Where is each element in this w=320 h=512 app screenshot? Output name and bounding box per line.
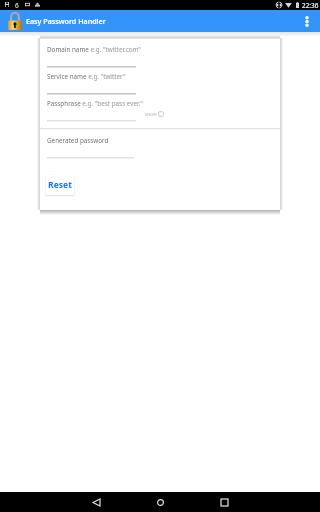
button[interactable]: More options <box>296 10 318 32</box>
staticText: Service name e.g. "twitter" <box>47 72 126 81</box>
button[interactable]: Home <box>150 492 170 512</box>
staticText: Passphrase e.g. "best pass ever." <box>47 99 143 108</box>
staticText: Easy Password Handler <box>26 16 106 26</box>
button[interactable]: Back <box>86 492 106 512</box>
button[interactable]: Show passphrase <box>145 111 164 117</box>
button[interactable]: Recent apps <box>214 492 234 512</box>
staticText: Domain name e.g. "twitter.com" <box>47 45 141 54</box>
staticText: SHOW <box>145 112 157 117</box>
button[interactable]: Reset <box>46 175 74 195</box>
staticText: 6 <box>15 1 19 10</box>
staticText: Generated password <box>47 136 109 145</box>
staticText: 22:36 <box>302 1 319 10</box>
staticText: Reset <box>48 179 72 191</box>
